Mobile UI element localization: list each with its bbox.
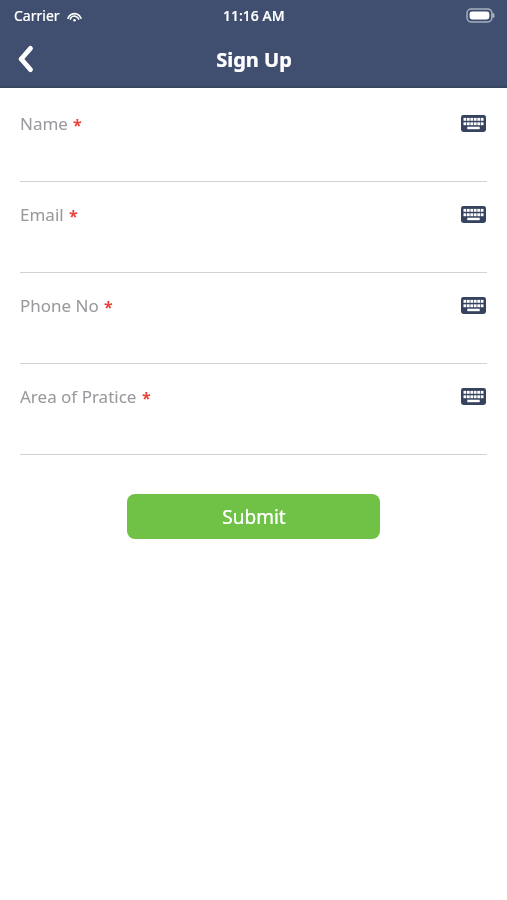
other: Show keyboard [461,297,486,314]
staticText: Email [20,203,64,226]
button[interactable]: Back [0,33,52,85]
staticText: * [69,205,78,227]
staticText: Area of Pratice [20,385,137,408]
other: Show keyboard [461,115,486,132]
button[interactable]: Name [0,91,507,182]
button[interactable]: Area of Pratice [0,364,507,455]
other: Show keyboard [461,388,486,405]
staticText: Sign Up [216,46,292,73]
staticText: * [104,296,113,318]
staticText: Phone No [20,294,99,317]
button[interactable]: Submit [127,494,380,539]
staticText: Carrier [14,6,60,25]
staticText: * [142,387,151,409]
staticText: * [73,114,82,136]
staticText: Name [20,112,68,135]
staticText: 11:16 AM [223,6,285,25]
staticText: Submit [222,504,286,530]
other: Show keyboard [461,206,486,223]
button[interactable]: Email [0,182,507,273]
button[interactable]: Phone No [0,273,507,364]
